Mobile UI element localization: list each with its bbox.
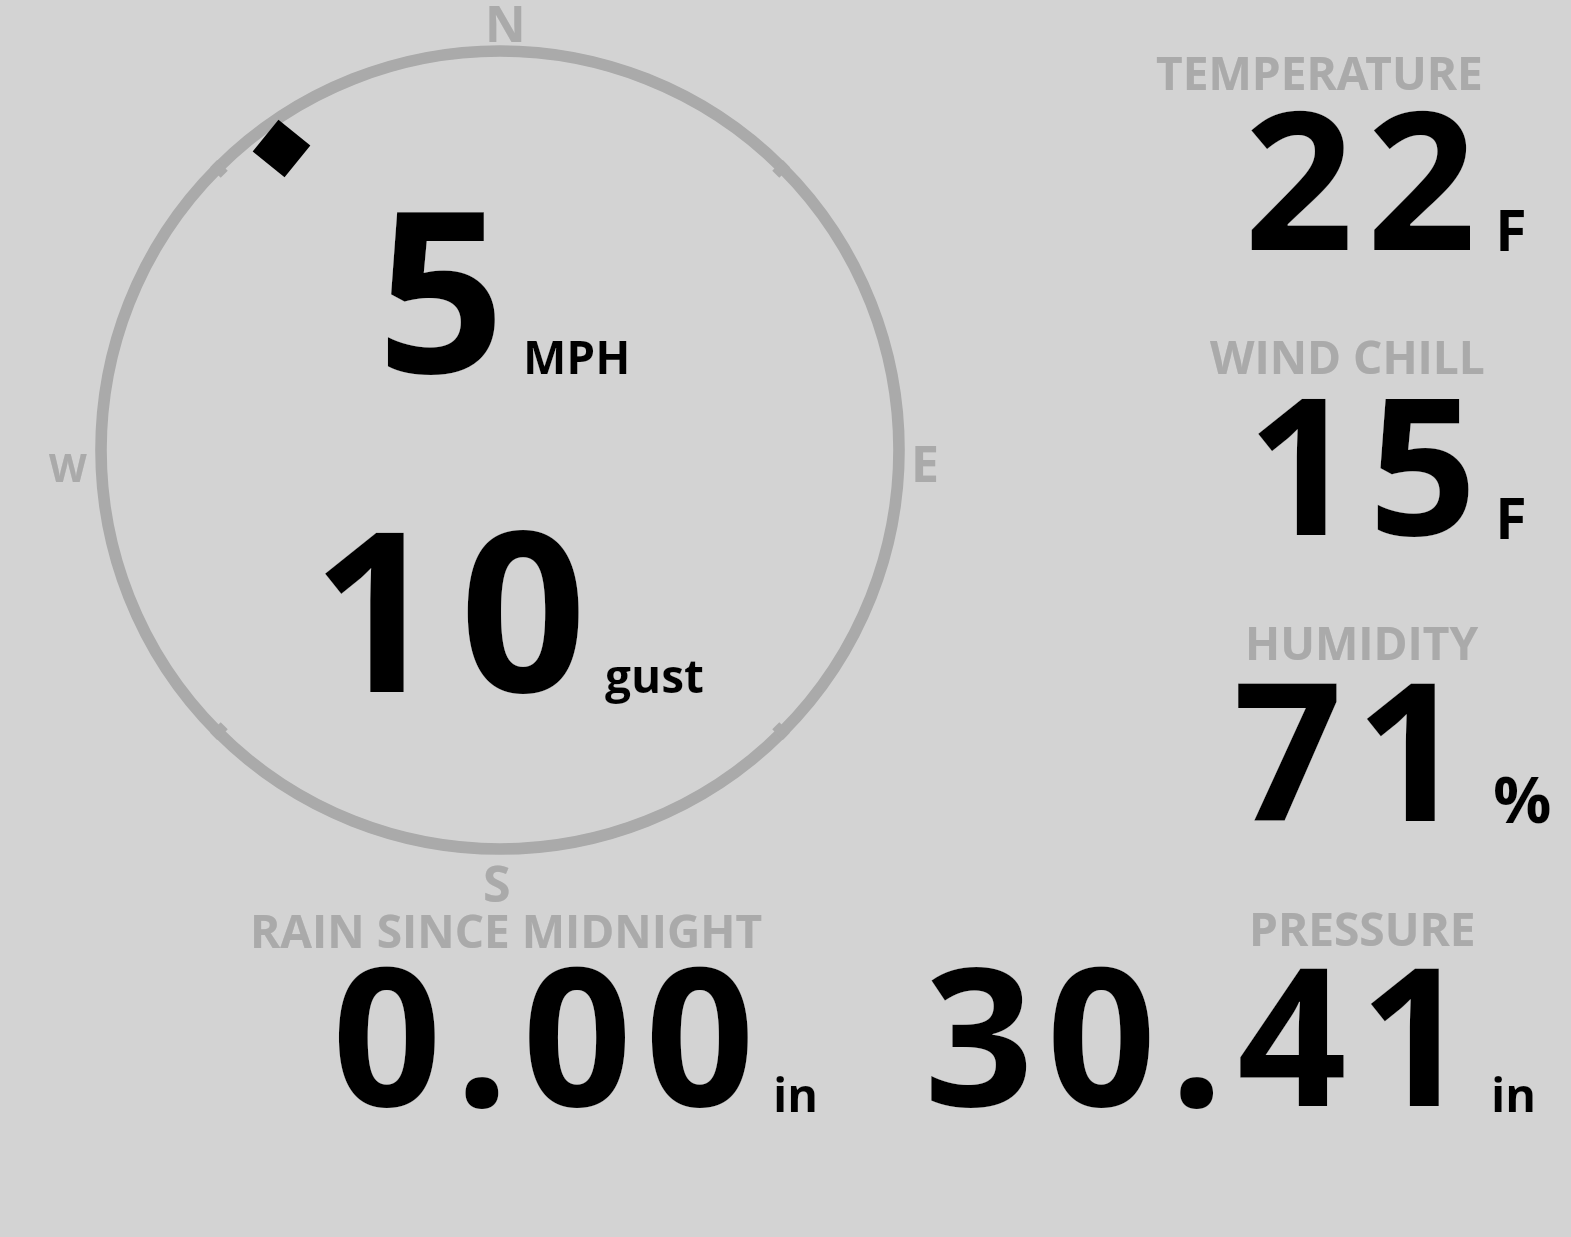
staticText: 15 — [1247, 332, 1490, 591]
staticText: % — [1493, 754, 1552, 843]
staticText: WIND CHILL — [1210, 325, 1485, 388]
button[interactable]: Temperature 22 degrees Fahrenheit — [1000, 14, 1571, 286]
button[interactable]: Wind 5 miles per hour, gusting 10, from … — [40, 0, 960, 910]
button[interactable]: Wind chill 15 degrees Fahrenheit — [1000, 300, 1571, 572]
staticText: TEMPERATURE — [1156, 41, 1483, 104]
button[interactable]: Pressure 30.41 inches — [880, 880, 1560, 1130]
staticText: 0.00 — [332, 901, 768, 1151]
staticText: in — [1491, 1062, 1537, 1126]
staticText: MPH — [523, 325, 631, 388]
button[interactable]: Humidity 71 percent — [1000, 586, 1571, 858]
staticText: N — [485, 0, 526, 57]
staticText: 5 — [377, 134, 505, 439]
staticText: in — [773, 1062, 819, 1126]
staticText: 71 — [1233, 616, 1479, 877]
staticText: PRESSURE — [1249, 897, 1476, 960]
button[interactable]: Rain since midnight 0.00 inches — [180, 880, 860, 1130]
staticText: F — [1495, 477, 1527, 556]
staticText: S — [483, 849, 511, 917]
staticText: HUMIDITY — [1245, 611, 1479, 674]
staticText: 22 — [1244, 45, 1490, 306]
staticText: W — [49, 440, 87, 493]
staticText: 10 — [312, 455, 608, 757]
staticText: F — [1495, 189, 1527, 268]
staticText: E — [911, 429, 940, 497]
staticText: gust — [605, 644, 705, 707]
staticText: RAIN SINCE MIDNIGHT — [250, 899, 763, 962]
staticText: 30.41 — [924, 901, 1483, 1151]
other: Wind direction marker — [253, 120, 310, 177]
